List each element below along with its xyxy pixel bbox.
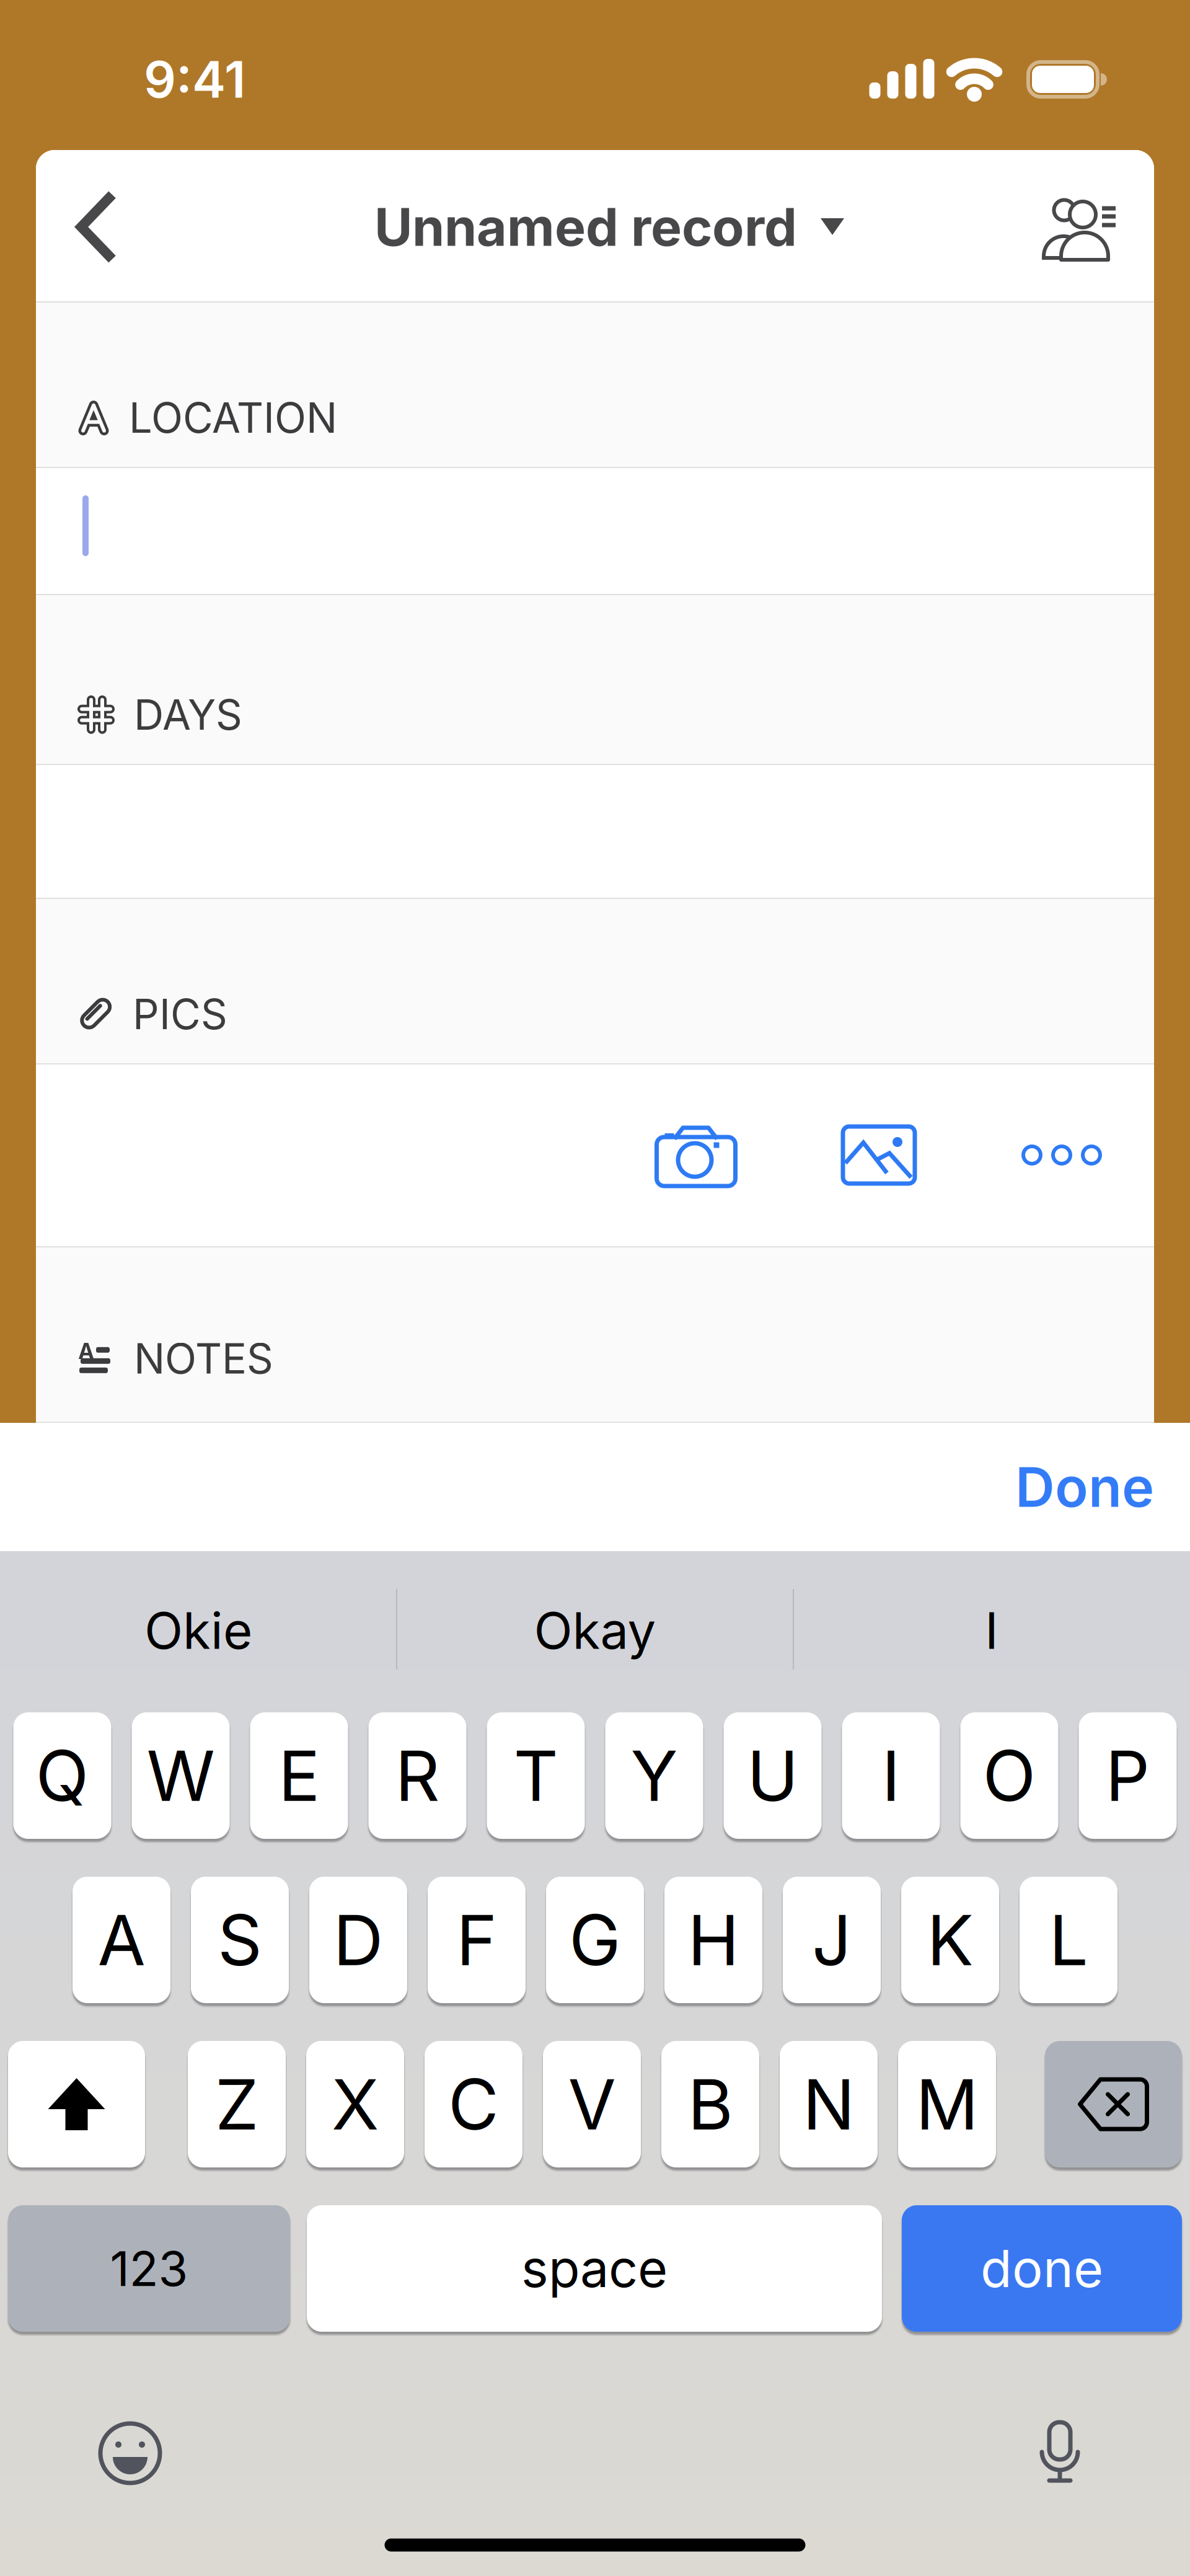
staticText: F bbox=[456, 1899, 497, 1981]
button[interactable]: Delete bbox=[1045, 2041, 1182, 2167]
button[interactable]: Okay bbox=[534, 1601, 656, 1660]
button[interactable]: done bbox=[902, 2205, 1182, 2332]
button[interactable]: D bbox=[309, 1877, 407, 2003]
staticText: A bbox=[98, 1899, 145, 1981]
button[interactable]: Y bbox=[605, 1712, 703, 1839]
staticText: G bbox=[569, 1899, 621, 1981]
staticText: Okie bbox=[144, 1601, 252, 1660]
button[interactable]: V bbox=[543, 2041, 641, 2167]
staticText: I bbox=[882, 1735, 900, 1817]
staticText: N bbox=[803, 2063, 855, 2145]
button[interactable]: I bbox=[985, 1601, 998, 1660]
button[interactable]: U bbox=[724, 1712, 822, 1839]
button[interactable]: More attachment options bbox=[1023, 1146, 1100, 1164]
button[interactable]: C bbox=[425, 2041, 522, 2167]
button[interactable]: Back bbox=[58, 177, 132, 277]
button[interactable]: S bbox=[191, 1877, 289, 2003]
button[interactable]: B bbox=[661, 2041, 759, 2167]
button[interactable]: Done bbox=[1015, 1455, 1154, 1519]
button[interactable]: 123 bbox=[8, 2205, 290, 2332]
staticText: M bbox=[916, 2063, 978, 2145]
staticText: O bbox=[983, 1735, 1036, 1817]
button[interactable]: Choose photo bbox=[842, 1126, 916, 1184]
button[interactable]: F bbox=[428, 1877, 526, 2003]
button[interactable]: O bbox=[960, 1712, 1058, 1839]
button[interactable]: Take photo bbox=[656, 1124, 736, 1186]
staticText: Unnamed record bbox=[374, 196, 797, 258]
staticText: B bbox=[688, 2063, 733, 2145]
button[interactable]: H bbox=[664, 1877, 762, 2003]
staticText: K bbox=[927, 1899, 973, 1981]
button[interactable]: J bbox=[783, 1877, 881, 2003]
button[interactable]: I bbox=[842, 1712, 940, 1839]
button[interactable]: W bbox=[132, 1712, 230, 1839]
staticText: Q bbox=[36, 1735, 89, 1817]
button[interactable]: Shift bbox=[8, 2041, 145, 2167]
button[interactable]: R bbox=[368, 1712, 466, 1839]
staticText: D bbox=[333, 1899, 383, 1981]
button[interactable]: A bbox=[73, 1877, 170, 2003]
staticText: PICS bbox=[133, 990, 227, 1038]
staticText: L bbox=[1049, 1899, 1088, 1981]
staticText: 123 bbox=[110, 2240, 188, 2297]
staticText: A bbox=[78, 1338, 94, 1364]
staticText: LOCATION bbox=[129, 393, 337, 442]
staticText: DAYS bbox=[134, 690, 242, 739]
staticText: S bbox=[218, 1899, 262, 1981]
button[interactable]: Collaborators bbox=[1040, 196, 1117, 260]
button[interactable]: Dictation bbox=[1038, 2420, 1082, 2487]
button[interactable]: M bbox=[898, 2041, 996, 2167]
staticText: W bbox=[147, 1735, 215, 1817]
staticText: space bbox=[521, 2238, 668, 2299]
staticText: X bbox=[332, 2063, 379, 2145]
button[interactable]: Q bbox=[13, 1712, 111, 1839]
button[interactable]: Unnamed record bbox=[374, 196, 844, 258]
button[interactable]: Z bbox=[188, 2041, 286, 2167]
staticText: R bbox=[395, 1735, 440, 1817]
staticText: I bbox=[985, 1601, 998, 1660]
button[interactable]: E bbox=[250, 1712, 348, 1839]
staticText: H bbox=[688, 1899, 739, 1981]
staticText: Done bbox=[1015, 1455, 1154, 1519]
staticText: V bbox=[568, 2063, 616, 2145]
staticText: Okay bbox=[534, 1601, 656, 1660]
staticText: 9:41 bbox=[144, 50, 245, 109]
button[interactable]: L bbox=[1020, 1877, 1117, 2003]
button[interactable]: P bbox=[1079, 1712, 1177, 1839]
staticText: done bbox=[981, 2238, 1103, 2299]
staticText: C bbox=[448, 2063, 499, 2145]
button[interactable]: Location text field bbox=[36, 468, 1154, 594]
button[interactable]: X bbox=[306, 2041, 404, 2167]
staticText: Z bbox=[215, 2063, 258, 2145]
button[interactable]: Okie bbox=[144, 1601, 252, 1660]
staticText: NOTES bbox=[134, 1334, 273, 1383]
staticText: P bbox=[1105, 1735, 1150, 1817]
button[interactable]: N bbox=[780, 2041, 878, 2167]
button[interactable]: G bbox=[546, 1877, 644, 2003]
button[interactable]: Emoji bbox=[98, 2421, 162, 2485]
staticText: E bbox=[278, 1735, 320, 1817]
button[interactable]: K bbox=[901, 1877, 999, 2003]
staticText: Y bbox=[631, 1735, 678, 1817]
button[interactable]: T bbox=[487, 1712, 585, 1839]
staticText: U bbox=[747, 1735, 798, 1817]
button[interactable]: space bbox=[307, 2205, 882, 2332]
staticText: J bbox=[812, 1899, 852, 1981]
staticText: T bbox=[513, 1735, 558, 1817]
